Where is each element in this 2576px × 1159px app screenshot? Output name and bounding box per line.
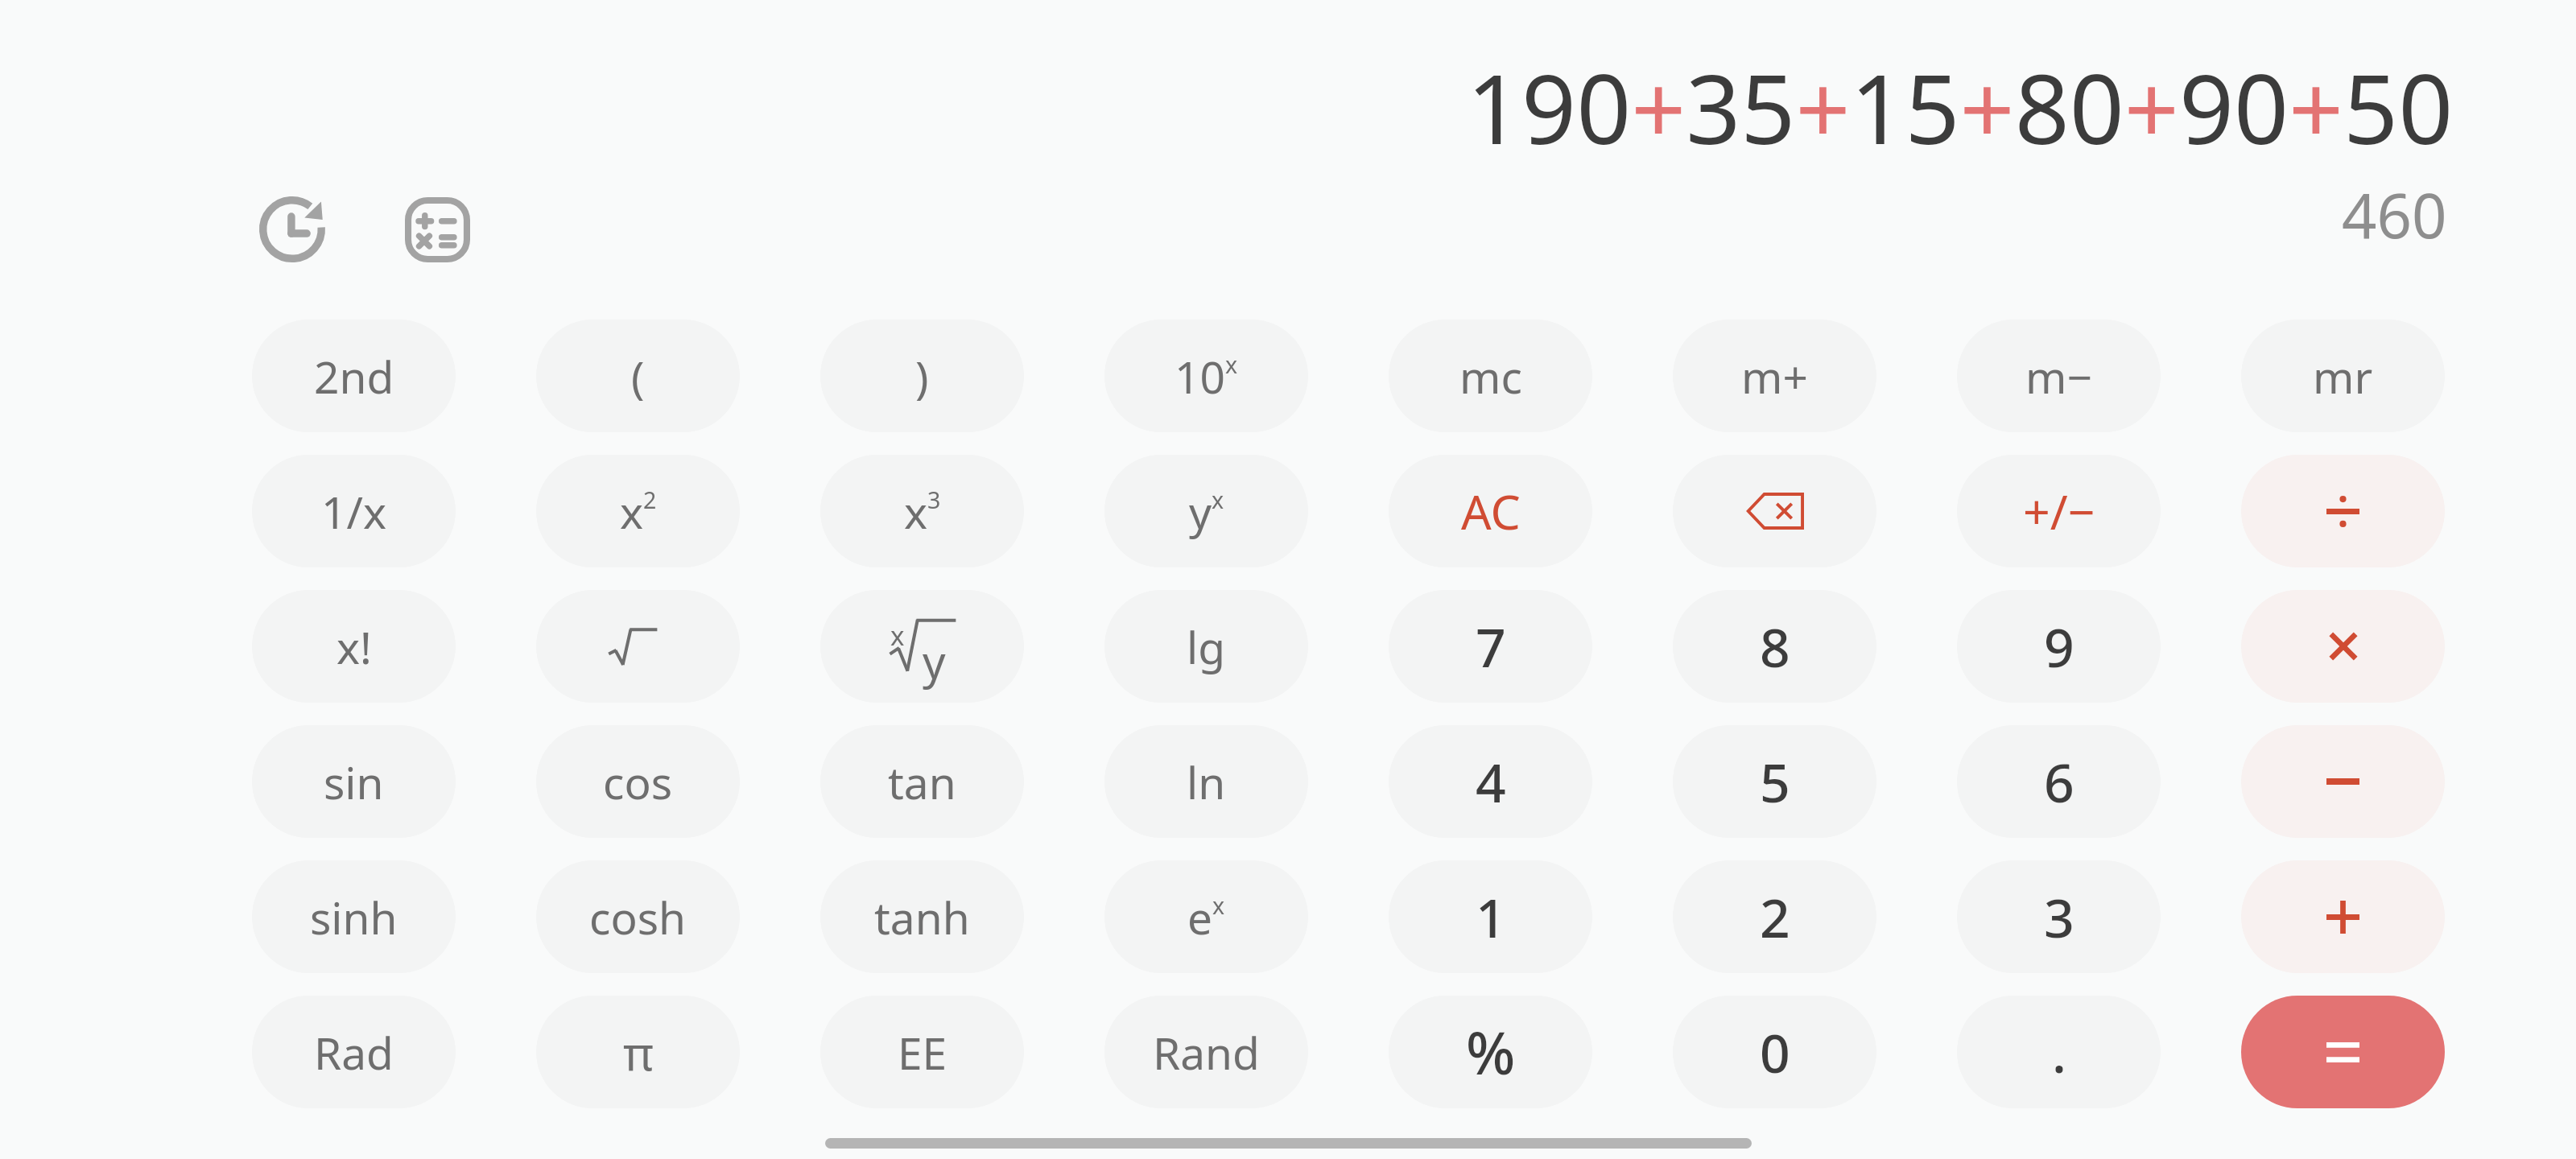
button[interactable]: 1/x [252,455,456,567]
button[interactable]: sinh [252,860,456,973]
button[interactable]: m+ [1673,320,1876,432]
button[interactable]: tan [820,725,1024,838]
button[interactable]: 2 [1673,860,1876,973]
button[interactable]: 3 [1957,860,2161,973]
button[interactable]: 8 [1673,590,1876,703]
button[interactable]: Minus [2241,725,2445,838]
staticText: 6 [2044,745,2074,818]
staticText: ex [1187,887,1225,947]
button[interactable]: Unit converter [397,189,477,270]
button[interactable]: 7 [1389,590,1592,703]
staticText: x2 [620,481,657,542]
staticText: mc [1459,346,1522,406]
button[interactable]: Rad [252,996,456,1108]
staticText: Rad [314,1022,394,1083]
staticText: % [1466,1013,1516,1091]
staticText: m− [2025,346,2092,406]
button[interactable]: x2 [536,455,740,567]
staticText: x [890,617,905,654]
staticText: 3 [2044,881,2074,953]
button[interactable]: 5 [1673,725,1876,838]
button[interactable]: mr [2241,320,2445,432]
staticText: 5 [1760,745,1790,818]
staticText: 2 [1760,881,1790,953]
staticText: sinh [310,887,398,947]
staticText: Rand [1153,1022,1260,1083]
staticText: 460 [2342,173,2447,257]
button[interactable]: cosh [536,860,740,973]
button[interactable]: Divide [2241,455,2445,567]
staticText: sin [324,752,384,812]
staticText: tanh [874,887,970,947]
button[interactable]: 1 [1389,860,1592,973]
button[interactable]: 0 [1673,996,1876,1108]
staticText: tan [888,752,956,812]
button[interactable]: x! [252,590,456,703]
staticText: π [623,1021,654,1084]
staticText: m+ [1741,346,1808,406]
button[interactable]: ln [1104,725,1308,838]
staticText: 10x [1174,346,1238,406]
staticText: AC [1461,479,1521,543]
button[interactable]: Equals [2241,996,2445,1108]
button[interactable]: +/− [1957,455,2161,567]
button[interactable]: m− [1957,320,2161,432]
button[interactable]: π [536,996,740,1108]
button[interactable]: yx [1104,455,1308,567]
button[interactable]: lg [1104,590,1308,703]
staticText: +/− [2023,479,2095,543]
staticText: y [923,630,946,691]
button[interactable]: Nth root [820,590,1024,703]
staticText: lg [1187,617,1226,677]
staticText: 1 [1476,881,1506,953]
staticText: x3 [904,481,941,542]
button[interactable]: Multiply [2241,590,2445,703]
button[interactable]: Square root [536,590,740,703]
button[interactable]: 2nd [252,320,456,432]
button[interactable]: Delete [1673,455,1876,567]
button[interactable]: EE [820,996,1024,1108]
button[interactable]: . [1957,996,2161,1108]
staticText: 190+35+15+80+90+50 [1467,42,2454,172]
button[interactable]: 10x [1104,320,1308,432]
button[interactable]: ) [820,320,1024,432]
button[interactable]: sin [252,725,456,838]
button[interactable]: Rand [1104,996,1308,1108]
staticText: . [2052,1016,2066,1088]
button[interactable]: 9 [1957,590,2161,703]
staticText: ) [915,346,929,406]
staticText: x! [336,617,372,677]
button[interactable]: ex [1104,860,1308,973]
button[interactable]: 6 [1957,725,2161,838]
button[interactable]: mc [1389,320,1592,432]
button[interactable]: % [1389,996,1592,1108]
button[interactable]: History [252,189,332,270]
staticText: mr [2313,346,2373,406]
staticText: 7 [1476,610,1506,683]
staticText: 9 [2044,610,2074,683]
staticText: yx [1189,481,1224,542]
button[interactable]: AC [1389,455,1592,567]
button[interactable]: 4 [1389,725,1592,838]
staticText: 8 [1760,610,1790,683]
staticText: 2nd [314,346,394,406]
button[interactable]: tanh [820,860,1024,973]
staticText: 4 [1476,745,1506,818]
staticText: ln [1187,752,1226,812]
button[interactable]: x3 [820,455,1024,567]
staticText: cos [603,752,673,812]
staticText: EE [898,1022,947,1083]
button[interactable]: ( [536,320,740,432]
button[interactable]: cos [536,725,740,838]
staticText: 1/x [321,481,387,542]
button[interactable]: Plus [2241,860,2445,973]
staticText: 0 [1760,1016,1790,1088]
staticText: cosh [589,887,687,947]
staticText: ( [631,346,645,406]
